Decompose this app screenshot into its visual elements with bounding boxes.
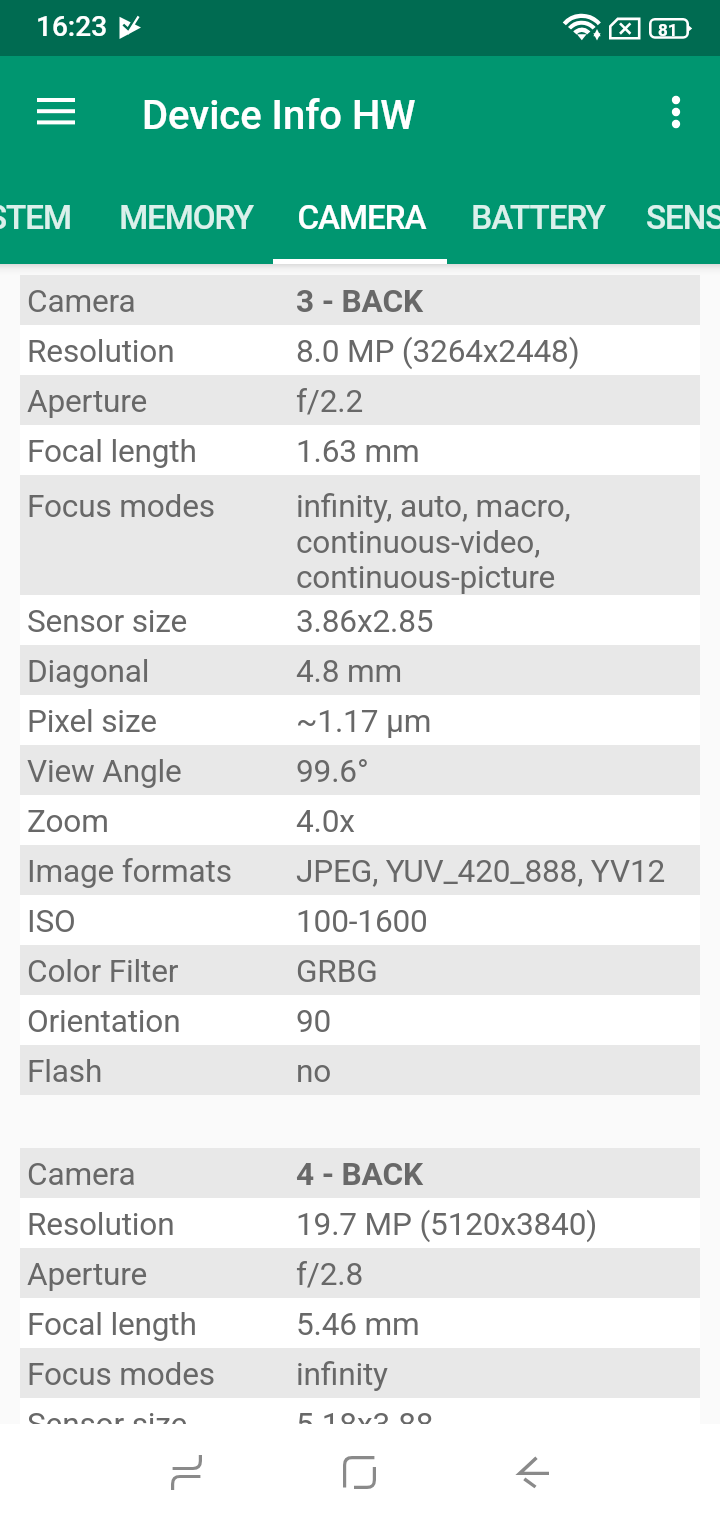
button[interactable]: Color Filter bbox=[20, 945, 700, 995]
button[interactable]: Aperture bbox=[20, 375, 700, 425]
button[interactable]: Open navigation drawer bbox=[8, 73, 104, 149]
button[interactable]: SENSORS bbox=[627, 190, 720, 264]
staticText: 3 - BACK bbox=[296, 283, 423, 320]
staticText: f/2.2 bbox=[296, 383, 364, 420]
button[interactable]: Camera bbox=[20, 275, 700, 325]
button[interactable]: Resolution bbox=[20, 325, 700, 375]
button[interactable]: Resolution bbox=[20, 1198, 700, 1248]
staticText: Camera bbox=[27, 1156, 136, 1193]
staticText: 81 bbox=[658, 20, 678, 40]
staticText: Sensor size bbox=[27, 603, 188, 640]
staticText: Color Filter bbox=[27, 953, 179, 990]
staticText: View Angle bbox=[27, 753, 182, 790]
button[interactable]: ISO bbox=[20, 895, 700, 945]
staticText: Camera bbox=[27, 283, 136, 320]
staticText: BATTERY bbox=[471, 198, 605, 237]
button[interactable]: Back bbox=[457, 1424, 610, 1520]
staticText: Zoom bbox=[27, 803, 109, 840]
staticText: Device Info HW bbox=[142, 92, 416, 139]
button[interactable]: Pixel size bbox=[20, 695, 700, 745]
staticText: CAMERA bbox=[297, 198, 426, 237]
button[interactable]: Focus modes bbox=[20, 475, 700, 595]
staticText: 4.0x bbox=[296, 803, 355, 840]
staticText: JPEG, YUV_420_888, YV12 bbox=[296, 853, 666, 890]
staticText: SENSORS bbox=[646, 198, 720, 237]
staticText: Pixel size bbox=[27, 703, 157, 740]
button[interactable]: Diagonal bbox=[20, 645, 700, 695]
staticText: GRBG bbox=[296, 953, 378, 990]
staticText: Resolution bbox=[27, 333, 175, 370]
staticText: Focal length bbox=[27, 433, 197, 470]
button[interactable]: BATTERY bbox=[450, 190, 626, 264]
button[interactable]: CAMERA bbox=[273, 190, 449, 264]
button[interactable]: Focal length bbox=[20, 1298, 700, 1348]
button[interactable]: Orientation bbox=[20, 995, 700, 1045]
staticText: Aperture bbox=[27, 1256, 148, 1293]
staticText: MEMORY bbox=[119, 198, 253, 237]
staticText: f/2.8 bbox=[296, 1256, 364, 1293]
button[interactable]: Recent apps bbox=[110, 1424, 263, 1520]
button[interactable]: Flash bbox=[20, 1045, 700, 1095]
staticText: 5.18x3.88 bbox=[296, 1406, 434, 1424]
staticText: Aperture bbox=[27, 383, 148, 420]
staticText: 1.63 mm bbox=[296, 433, 420, 470]
staticText: Orientation bbox=[27, 1003, 181, 1040]
staticText: SYSTEM bbox=[0, 198, 71, 237]
staticText: ~1.17 µm bbox=[296, 703, 432, 740]
staticText: Flash bbox=[27, 1053, 103, 1090]
staticText: Image formats bbox=[27, 853, 232, 890]
staticText: 90 bbox=[296, 1003, 332, 1040]
staticText: Diagonal bbox=[27, 653, 150, 690]
staticText: infinity, auto, macro, continuous-video,… bbox=[296, 488, 571, 595]
staticText: 4.8 mm bbox=[296, 653, 403, 690]
staticText: Focus modes bbox=[27, 488, 215, 525]
staticText: 4 - BACK bbox=[296, 1156, 423, 1193]
staticText: 16:23 bbox=[36, 10, 108, 43]
button[interactable]: Focus modes bbox=[20, 1348, 700, 1398]
staticText: Sensor size bbox=[27, 1406, 188, 1424]
button[interactable]: Aperture bbox=[20, 1248, 700, 1298]
button[interactable]: Image formats bbox=[20, 845, 700, 895]
staticText: infinity bbox=[296, 1356, 388, 1393]
staticText: 99.6° bbox=[296, 753, 369, 790]
staticText: 19.7 MP (5120x3840) bbox=[296, 1206, 598, 1243]
button[interactable]: MEMORY bbox=[98, 190, 274, 264]
staticText: 3.86x2.85 bbox=[296, 603, 434, 640]
staticText: 8.0 MP (3264x2448) bbox=[296, 333, 580, 370]
button[interactable]: Zoom bbox=[20, 795, 700, 845]
staticText: 100-1600 bbox=[296, 903, 428, 940]
staticText: Resolution bbox=[27, 1206, 175, 1243]
button[interactable]: View Angle bbox=[20, 745, 700, 795]
staticText: 5.46 mm bbox=[296, 1306, 420, 1343]
button[interactable]: Focal length bbox=[20, 425, 700, 475]
staticText: Focus modes bbox=[27, 1356, 215, 1393]
button[interactable]: SYSTEM bbox=[0, 190, 98, 264]
button[interactable]: More options bbox=[638, 74, 714, 150]
staticText: no bbox=[296, 1053, 332, 1090]
staticText: ISO bbox=[27, 903, 76, 940]
button[interactable]: Sensor size bbox=[20, 595, 700, 645]
button[interactable]: Home bbox=[283, 1424, 436, 1520]
staticText: Focal length bbox=[27, 1306, 197, 1343]
button[interactable]: Sensor size bbox=[20, 1398, 700, 1424]
button[interactable]: Camera bbox=[20, 1148, 700, 1198]
